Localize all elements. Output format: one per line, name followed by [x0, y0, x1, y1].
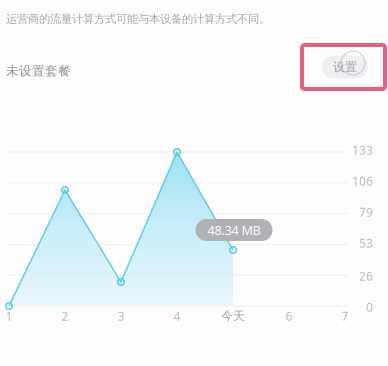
- staticText: 79: [359, 204, 373, 220]
- staticText: 今天: [221, 308, 245, 323]
- staticText: 0: [366, 299, 373, 315]
- staticText: 7: [341, 308, 348, 324]
- staticText: 133: [352, 142, 373, 158]
- staticText: 运营商的流量计算方式可能与本设备的计算方式不同。: [6, 12, 270, 26]
- staticText: 6: [285, 308, 292, 324]
- staticText: 设置: [333, 59, 357, 74]
- staticText: 26: [359, 268, 373, 284]
- button[interactable]: 设置: [322, 55, 368, 78]
- staticText: 3: [117, 308, 124, 324]
- staticText: 未设置套餐: [6, 63, 71, 79]
- staticText: 2: [61, 308, 68, 324]
- staticText: 1: [5, 308, 12, 324]
- staticText: 106: [352, 173, 373, 189]
- staticText: 48.34 MB: [207, 221, 260, 239]
- staticText: 4: [173, 308, 180, 324]
- staticText: 53: [359, 235, 373, 251]
